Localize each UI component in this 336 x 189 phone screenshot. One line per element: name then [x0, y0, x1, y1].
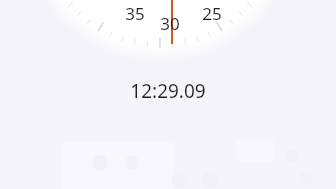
- staticText: 12:29.09: [130, 78, 206, 104]
- staticText: 25: [202, 2, 222, 22]
- button[interactable]: 12:29.09: [108, 78, 228, 104]
- staticText: 35: [125, 2, 145, 22]
- staticText: 30: [160, 12, 180, 32]
- button[interactable]: Stopwatch dial: [40, 0, 280, 56]
